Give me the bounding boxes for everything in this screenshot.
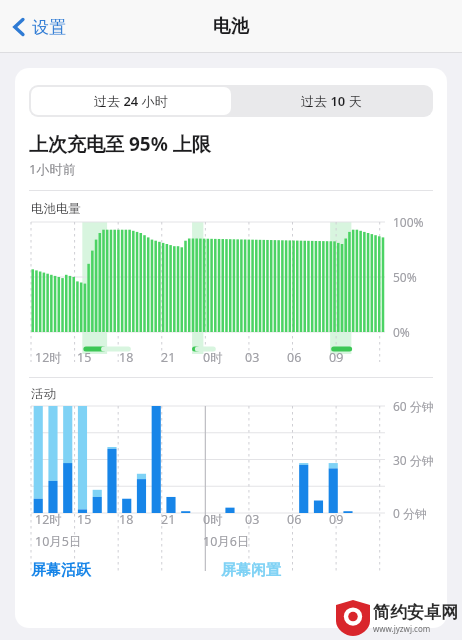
staticText: 10月5日: [35, 533, 82, 550]
staticText: 0 分钟: [393, 505, 427, 521]
staticText: 30 分钟: [393, 452, 434, 468]
button[interactable]: 设置: [8, 10, 70, 44]
staticText: 上次充电至 95% 上限: [29, 131, 211, 157]
staticText: 100%: [393, 214, 424, 230]
staticText: 60 分钟: [393, 398, 434, 414]
staticText: 09: [329, 511, 344, 528]
staticText: 21: [161, 349, 176, 366]
staticText: 屏幕活跃: [31, 561, 91, 580]
staticText: 电池电量: [31, 201, 81, 217]
staticText: 简约安卓网: [373, 602, 458, 623]
staticText: 过去 10 天: [301, 92, 362, 110]
staticText: 0时: [203, 511, 223, 528]
staticText: 15: [77, 511, 92, 528]
staticText: 50%: [393, 269, 417, 285]
staticText: 03: [245, 511, 260, 528]
button[interactable]: 过去 10 天: [231, 87, 431, 115]
staticText: 电池: [213, 15, 249, 38]
staticText: 18: [119, 511, 134, 528]
staticText: 10月6日: [203, 533, 250, 550]
staticText: 09: [329, 349, 344, 366]
staticText: 21: [161, 511, 176, 528]
staticText: 03: [245, 349, 260, 366]
staticText: 06: [287, 349, 302, 366]
staticText: www.jyzwj.com: [373, 623, 431, 634]
staticText: 活动: [31, 386, 56, 402]
button[interactable]: 过去 24 小时: [31, 87, 231, 115]
staticText: 12时: [35, 511, 62, 528]
staticText: 06: [287, 511, 302, 528]
staticText: 0%: [393, 324, 410, 340]
staticText: 12时: [35, 349, 62, 366]
staticText: 设置: [32, 17, 66, 38]
staticText: 0时: [203, 349, 223, 366]
staticText: 18: [119, 349, 134, 366]
staticText: 1小时前: [29, 160, 76, 178]
staticText: 屏幕闲置: [221, 561, 281, 580]
staticText: 15: [77, 349, 92, 366]
staticText: 过去 24 小时: [94, 92, 168, 110]
